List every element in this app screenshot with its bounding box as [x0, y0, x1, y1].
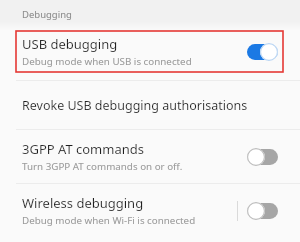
staticText: USB debugging — [22, 35, 118, 53]
staticText: Turn 3GPP AT commands on or off. — [22, 160, 183, 173]
staticText: Wireless debugging — [22, 194, 144, 212]
staticText: Debug mode when Wi-Fi is connected — [22, 214, 196, 227]
button[interactable]: Toggle on — [247, 43, 278, 61]
staticText: Revoke USB debugging authorisations — [22, 97, 248, 114]
button[interactable]: Toggle off — [247, 202, 278, 220]
button[interactable]: Toggle off — [247, 148, 278, 166]
button[interactable]: 3GPP AT commands — [0, 130, 300, 183]
staticText: 3GPP AT commands — [22, 140, 144, 158]
button[interactable]: Revoke USB debugging authorisations — [0, 81, 300, 129]
button[interactable]: Wireless debugging — [0, 184, 300, 237]
staticText: Debugging — [22, 8, 72, 21]
staticText: Debug mode when USB is connected — [22, 55, 192, 68]
